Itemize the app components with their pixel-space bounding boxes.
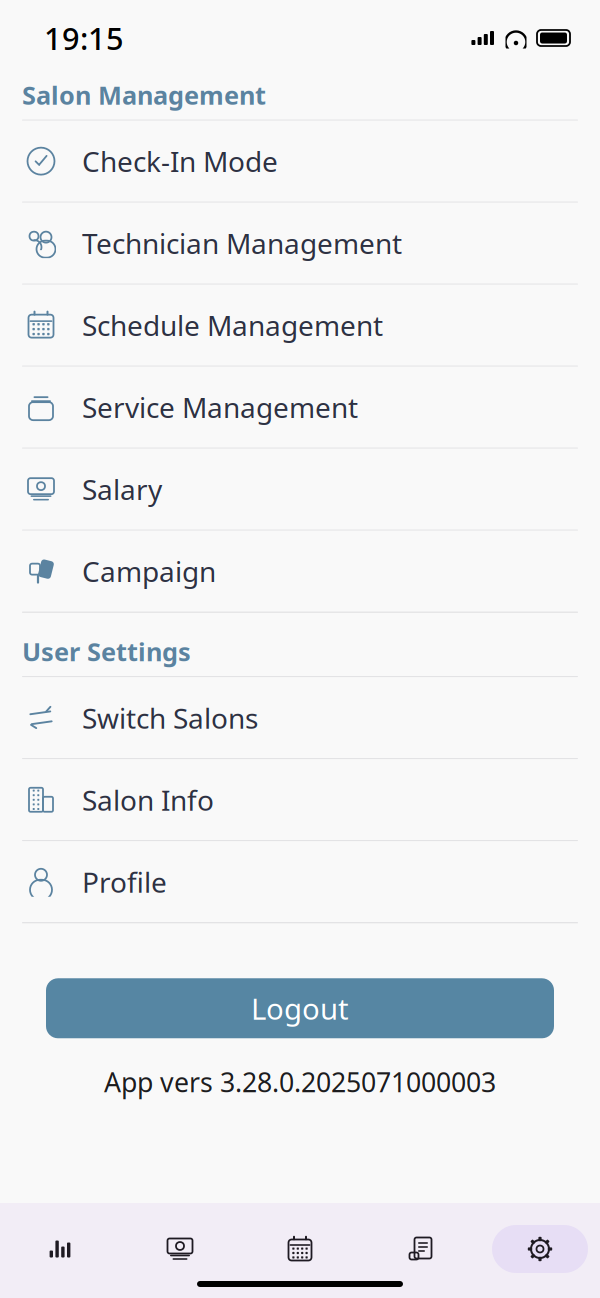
button[interactable]: Campaign xyxy=(0,531,600,613)
staticText: 19:15 xyxy=(44,18,124,58)
button[interactable]: Payments xyxy=(132,1225,228,1273)
staticText: Service Management xyxy=(82,389,358,426)
staticText: Profile xyxy=(82,863,167,900)
button[interactable]: Service Management xyxy=(0,367,600,449)
button[interactable]: Schedule Management xyxy=(0,285,600,367)
button[interactable]: Profile xyxy=(0,841,600,923)
staticText: User Settings xyxy=(22,635,191,668)
button[interactable]: Switch Salons xyxy=(0,677,600,759)
staticText: Switch Salons xyxy=(82,699,258,736)
button[interactable]: Reports xyxy=(12,1225,108,1273)
staticText: Salary xyxy=(82,471,162,508)
button[interactable]: Technician Management xyxy=(0,203,600,285)
staticText: Campaign xyxy=(82,553,216,590)
staticText: Check-In Mode xyxy=(82,143,278,180)
staticText: Salon Management xyxy=(22,78,266,112)
staticText: Schedule Management xyxy=(82,307,383,344)
button[interactable]: Settings xyxy=(492,1225,588,1273)
button[interactable]: Check-In Mode xyxy=(0,121,600,203)
staticText: Salon Info xyxy=(82,781,214,818)
button[interactable]: Salon Info xyxy=(0,759,600,841)
button[interactable]: Calendar xyxy=(252,1225,348,1273)
staticText: App vers 3.28.0.2025071000003 xyxy=(104,1064,496,1100)
staticText: Technician Management xyxy=(82,225,402,262)
button[interactable]: Salary xyxy=(0,449,600,531)
button[interactable]: Logout xyxy=(46,978,554,1038)
button[interactable]: Invoices xyxy=(372,1225,468,1273)
staticText: Logout xyxy=(251,989,349,1028)
